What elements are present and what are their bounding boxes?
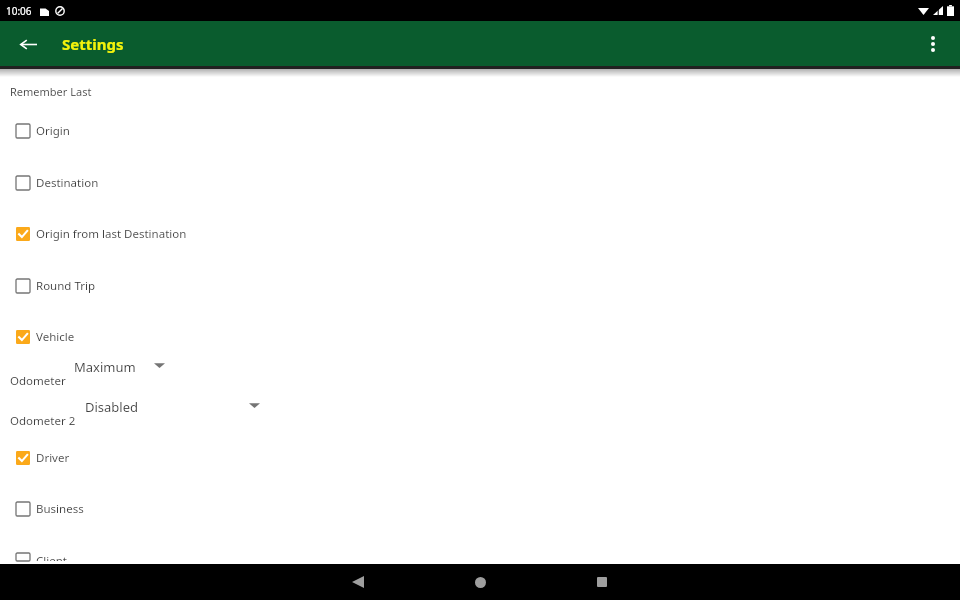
staticText: Odometer 2 xyxy=(10,413,76,429)
staticText: Vehicle xyxy=(36,329,75,345)
button[interactable]: Origin xyxy=(0,120,960,142)
button[interactable]: Round Trip xyxy=(0,275,960,297)
staticText: Origin from last Destination xyxy=(36,226,187,242)
staticText: Settings xyxy=(62,34,124,54)
staticText: Round Trip xyxy=(36,278,95,294)
button[interactable]: Destination xyxy=(0,172,960,194)
button[interactable]: Odometer xyxy=(0,354,960,394)
staticText: Driver xyxy=(36,450,70,466)
staticText: Client xyxy=(36,553,67,561)
button[interactable]: Business xyxy=(0,498,960,520)
staticText: Origin xyxy=(36,123,70,139)
button[interactable]: Client xyxy=(0,550,960,564)
button[interactable]: Origin from last Destination xyxy=(0,223,960,245)
staticText: Maximum xyxy=(74,358,136,376)
button[interactable]: More options xyxy=(916,27,950,61)
button[interactable]: Vehicle xyxy=(0,326,960,348)
staticText: 10:06 xyxy=(6,4,32,18)
button[interactable]: Driver xyxy=(0,447,960,469)
staticText: Disabled xyxy=(85,398,139,416)
button[interactable]: Recent apps xyxy=(584,564,620,600)
button[interactable]: Home xyxy=(462,564,498,600)
staticText: Destination xyxy=(36,175,99,191)
button[interactable]: Back xyxy=(340,564,376,600)
button[interactable]: Back xyxy=(12,28,44,60)
staticText: Business xyxy=(36,501,84,517)
staticText: Odometer xyxy=(10,373,66,389)
button[interactable]: Odometer 2 xyxy=(0,394,960,434)
staticText: Remember Last xyxy=(10,84,92,99)
